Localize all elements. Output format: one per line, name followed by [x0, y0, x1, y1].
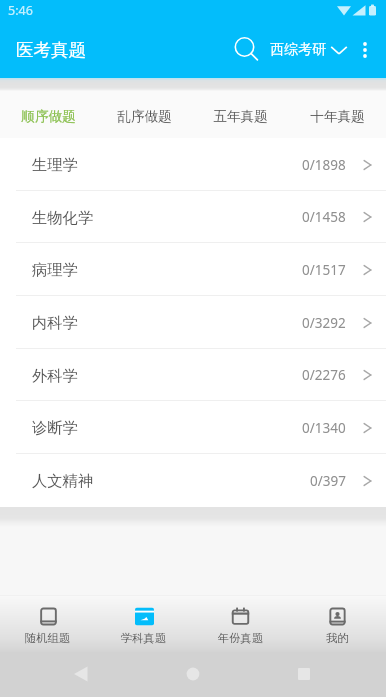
button[interactable]: 年份真题 [192, 596, 289, 652]
button[interactable]: 我的 [289, 596, 386, 652]
staticText: 随机组题 [25, 631, 71, 645]
staticText: 0/2276 [302, 366, 346, 384]
button[interactable]: 顺序做题 [0, 94, 96, 138]
staticText: 生理学 [32, 155, 78, 174]
staticText: 病理学 [32, 260, 78, 279]
staticText: 学科真题 [121, 631, 167, 645]
staticText: 0/1340 [302, 419, 346, 437]
staticText: 我的 [326, 631, 349, 645]
staticText: 医考真题 [16, 39, 86, 61]
staticText: 年份真题 [218, 631, 264, 645]
button[interactable]: 病理学 [0, 243, 386, 296]
button[interactable]: 西综考研 [268, 21, 350, 78]
staticText: 0/1458 [302, 208, 346, 226]
button[interactable]: Search [226, 29, 268, 71]
button[interactable]: 生物化学 [0, 191, 386, 243]
staticText: 0/3292 [302, 314, 346, 332]
button[interactable]: 内科学 [0, 296, 386, 349]
button[interactable]: 学科真题 [96, 596, 192, 652]
button[interactable]: More options [350, 35, 380, 65]
staticText: 乱序做题 [117, 108, 172, 125]
button[interactable]: 外科学 [0, 349, 386, 401]
staticText: 外科学 [32, 366, 78, 385]
button[interactable]: 诊断学 [0, 401, 386, 454]
button[interactable]: 人文精神 [0, 454, 386, 507]
button[interactable]: 乱序做题 [96, 94, 192, 138]
staticText: 0/1517 [302, 261, 346, 279]
button[interactable]: 随机组题 [0, 596, 96, 652]
staticText: 5:46 [8, 2, 33, 19]
staticText: 人文精神 [32, 471, 94, 490]
button[interactable]: 十年真题 [289, 94, 386, 138]
staticText: 0/1898 [302, 156, 346, 174]
staticText: 五年真题 [213, 108, 268, 125]
staticText: 十年真题 [310, 108, 365, 125]
staticText: 顺序做题 [21, 108, 76, 125]
staticText: 生物化学 [32, 208, 94, 227]
staticText: 内科学 [32, 313, 78, 332]
button[interactable]: 生理学 [0, 138, 386, 191]
staticText: 0/397 [310, 472, 346, 490]
staticText: 西综考研 [270, 41, 326, 59]
staticText: 诊断学 [32, 418, 78, 437]
button[interactable]: 五年真题 [192, 94, 289, 138]
